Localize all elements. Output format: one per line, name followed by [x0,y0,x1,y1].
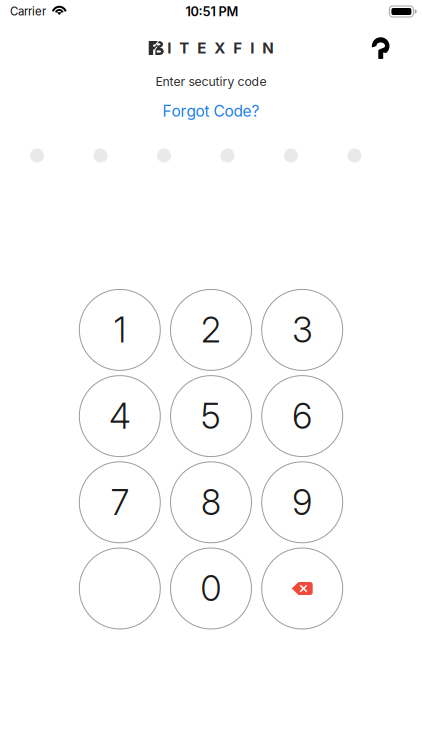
button[interactable]: 1 [79,289,160,370]
button[interactable]: 5 [170,376,251,457]
staticText: 0 [200,567,221,609]
staticText: 7 [111,481,129,523]
button[interactable]: Help [370,37,391,59]
button[interactable]: 4 [79,376,160,457]
staticText: 6 [292,395,312,437]
staticText: 1 [114,309,126,351]
staticText: Carrier [10,5,46,18]
staticText: 5 [201,395,221,437]
staticText: 8 [201,481,221,523]
staticText: 10:51 PM [185,4,238,19]
staticText: I T E X F I N [167,39,273,57]
button[interactable]: Delete [262,548,343,629]
button[interactable]: 3 [262,289,343,370]
button[interactable]: 8 [170,462,251,543]
button[interactable]: 2 [170,289,251,370]
button[interactable]: 7 [79,462,160,543]
staticText: 3 [292,309,312,351]
staticText: Enter secutiry code [155,74,266,89]
button[interactable]: Forgot Code? [162,102,259,120]
staticText: 2 [201,309,221,351]
button[interactable]: 9 [262,462,343,543]
button[interactable]: 0 [170,548,251,629]
staticText: 9 [292,481,312,523]
button[interactable]: 6 [262,376,343,457]
staticText: 4 [109,395,130,437]
button[interactable]: Blank [79,548,160,629]
staticText: Forgot Code? [162,102,259,120]
